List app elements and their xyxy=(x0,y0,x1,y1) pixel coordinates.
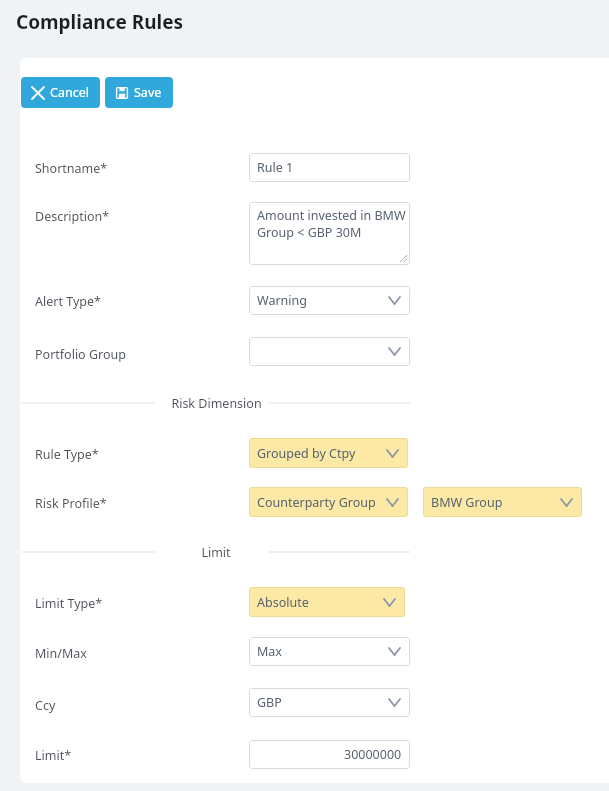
staticText: Max xyxy=(257,643,282,660)
staticText: 30000000 xyxy=(344,746,402,763)
staticText: Warning xyxy=(257,292,307,309)
staticText: Min/Max xyxy=(35,645,87,662)
staticText: Save xyxy=(134,84,162,101)
staticText: GBP xyxy=(257,694,282,711)
staticText: Risk Dimension xyxy=(171,395,262,412)
button[interactable]: Amount invested in BMW Group < GBP 30M xyxy=(249,202,410,265)
button[interactable]: Select option xyxy=(249,487,408,517)
staticText: Absolute xyxy=(257,594,309,611)
button[interactable]: Select option xyxy=(249,688,410,717)
button[interactable]: Select option xyxy=(249,337,410,366)
button[interactable]: Cancel xyxy=(21,77,100,108)
staticText: Amount invested in BMW Group < GBP 30M xyxy=(257,207,406,241)
button[interactable]: Save xyxy=(105,77,173,108)
staticText: Description* xyxy=(35,208,110,225)
staticText: Ccy xyxy=(35,697,56,714)
button[interactable]: Rule 1 xyxy=(249,153,410,182)
staticText: Shortname* xyxy=(35,160,108,177)
staticText: Limit* xyxy=(35,747,72,764)
staticText: Alert Type* xyxy=(35,293,101,310)
button[interactable]: Select option xyxy=(249,637,410,666)
staticText: Risk Profile* xyxy=(35,495,107,512)
staticText: Rule Type* xyxy=(35,446,99,463)
staticText: Limit Type* xyxy=(35,595,103,612)
staticText: Compliance Rules xyxy=(16,9,184,35)
staticText: Cancel xyxy=(50,84,89,101)
button[interactable]: Select option xyxy=(249,587,405,617)
staticText: Limit xyxy=(201,544,231,561)
button[interactable]: Select option xyxy=(249,438,408,468)
staticText: Rule 1 xyxy=(257,159,294,176)
button[interactable]: Select option xyxy=(423,487,582,517)
staticText: BMW Group xyxy=(431,494,503,511)
staticText: Portfolio Group xyxy=(35,346,126,363)
button[interactable]: Select option xyxy=(249,286,410,315)
button[interactable]: 30000000 xyxy=(249,740,410,769)
staticText: Grouped by Ctpy xyxy=(257,445,356,462)
staticText: Counterparty Group xyxy=(257,494,376,511)
